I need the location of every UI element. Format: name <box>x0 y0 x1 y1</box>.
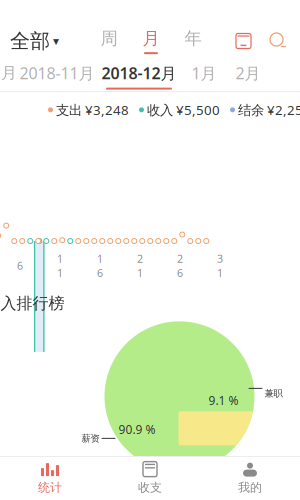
button[interactable]: 2月 <box>226 57 270 95</box>
staticText: 月 <box>142 28 159 49</box>
staticText: 收支 <box>138 480 162 495</box>
button[interactable]: 月 <box>134 24 168 58</box>
button[interactable]: 2018-12月 <box>96 57 182 95</box>
button[interactable]: 统计 <box>0 455 100 500</box>
staticText: 年 <box>184 28 201 49</box>
staticText: 统计 <box>38 480 62 495</box>
staticText: 9.1 % <box>208 392 238 408</box>
button[interactable]: 日历 <box>233 30 254 51</box>
staticText: 支出 ¥3,248 <box>56 101 129 119</box>
staticText: 我的 <box>238 480 262 495</box>
staticText: 21 <box>137 251 143 280</box>
staticText: 全部 <box>10 29 50 53</box>
button[interactable]: 年 <box>176 24 210 58</box>
staticText: 周 <box>100 28 117 49</box>
staticText: 1月 <box>191 62 216 84</box>
staticText: 26 <box>177 251 183 280</box>
button[interactable]: 我的 <box>200 455 300 500</box>
staticText: 6 <box>17 259 23 273</box>
staticText: 2月 <box>235 62 260 84</box>
staticText: 16 <box>97 251 103 280</box>
button[interactable]: 月 <box>0 58 18 94</box>
button[interactable]: 收支 <box>100 455 200 500</box>
staticText: 2018-11月 <box>19 62 94 84</box>
staticText: 90.9 % <box>118 421 155 437</box>
staticText: 31 <box>217 251 223 280</box>
button[interactable]: 周 <box>92 24 126 58</box>
staticText: 结余 ¥2,252 <box>238 101 300 119</box>
button[interactable]: 全部 <box>0 23 69 59</box>
staticText: 薪资 <box>81 433 99 444</box>
staticText: 11 <box>57 251 63 280</box>
button[interactable]: 2018-11月 <box>18 57 96 95</box>
staticText: 月 <box>1 63 17 83</box>
staticText: 兼职 <box>264 388 282 399</box>
staticText: 2018-12月 <box>101 62 176 84</box>
staticText: 收入排行榜 <box>0 294 64 313</box>
button[interactable]: 1月 <box>182 57 226 95</box>
staticText: ▾ <box>53 34 59 48</box>
button[interactable]: 搜索 <box>266 29 290 53</box>
staticText: 收入 ¥5,500 <box>147 101 220 119</box>
